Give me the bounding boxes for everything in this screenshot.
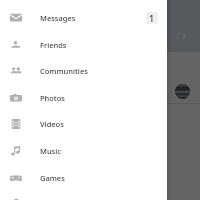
staticText: Friends [40, 40, 67, 50]
button[interactable]: Communities [0, 57, 167, 84]
button[interactable]: Local [0, 190, 167, 200]
button[interactable]: Messages [0, 4, 167, 31]
staticText: Games [40, 173, 65, 183]
staticText: Videos [40, 119, 64, 129]
staticText: Communities [40, 66, 88, 76]
staticText: 1 [149, 12, 155, 24]
staticText: Photos [40, 93, 65, 103]
button[interactable]: Photos [0, 84, 167, 111]
button[interactable]: Music [0, 137, 167, 164]
button[interactable]: Videos [0, 110, 167, 137]
staticText: Music [40, 146, 61, 156]
button[interactable]: Games [0, 164, 167, 191]
staticText: Messages [40, 13, 76, 23]
button[interactable]: Friends [0, 31, 167, 58]
